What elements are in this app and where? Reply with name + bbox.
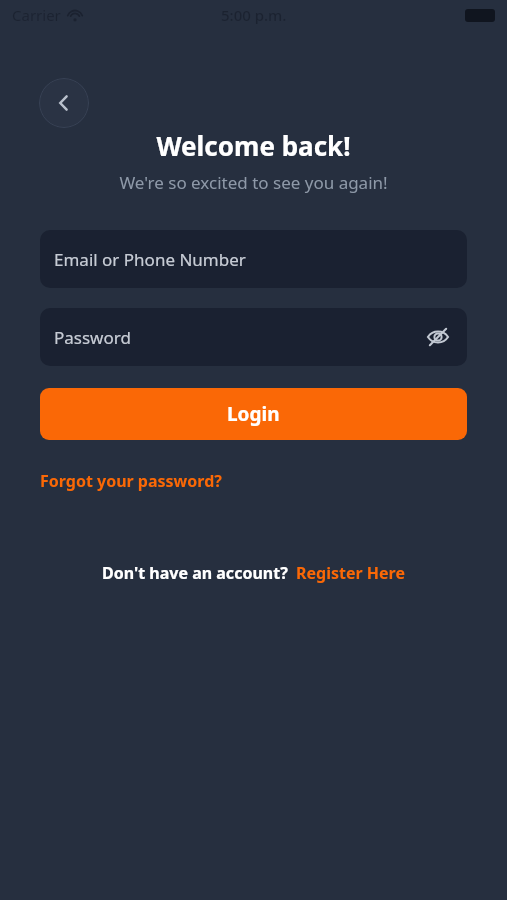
staticText: Login: [227, 401, 280, 427]
button[interactable]: Back: [39, 78, 89, 128]
button[interactable]: Email or Phone Number: [40, 230, 467, 288]
staticText: We're so excited to see you again!: [0, 171, 507, 194]
staticText: Forgot your password?: [40, 470, 222, 492]
staticText: Register Here: [296, 562, 405, 584]
staticText: Don't have an account?: [102, 562, 288, 584]
staticText: Welcome back!: [0, 128, 507, 163]
button[interactable]: Show password: [423, 322, 453, 352]
staticText: Password: [54, 326, 131, 349]
staticText: Email or Phone Number: [54, 248, 246, 271]
staticText: 5:00 p.m.: [221, 5, 287, 25]
button[interactable]: Register Here: [296, 562, 405, 584]
button[interactable]: Login: [40, 388, 467, 440]
button[interactable]: Password: [40, 308, 467, 366]
staticText: Carrier: [12, 5, 61, 25]
button[interactable]: Forgot your password?: [40, 470, 222, 492]
